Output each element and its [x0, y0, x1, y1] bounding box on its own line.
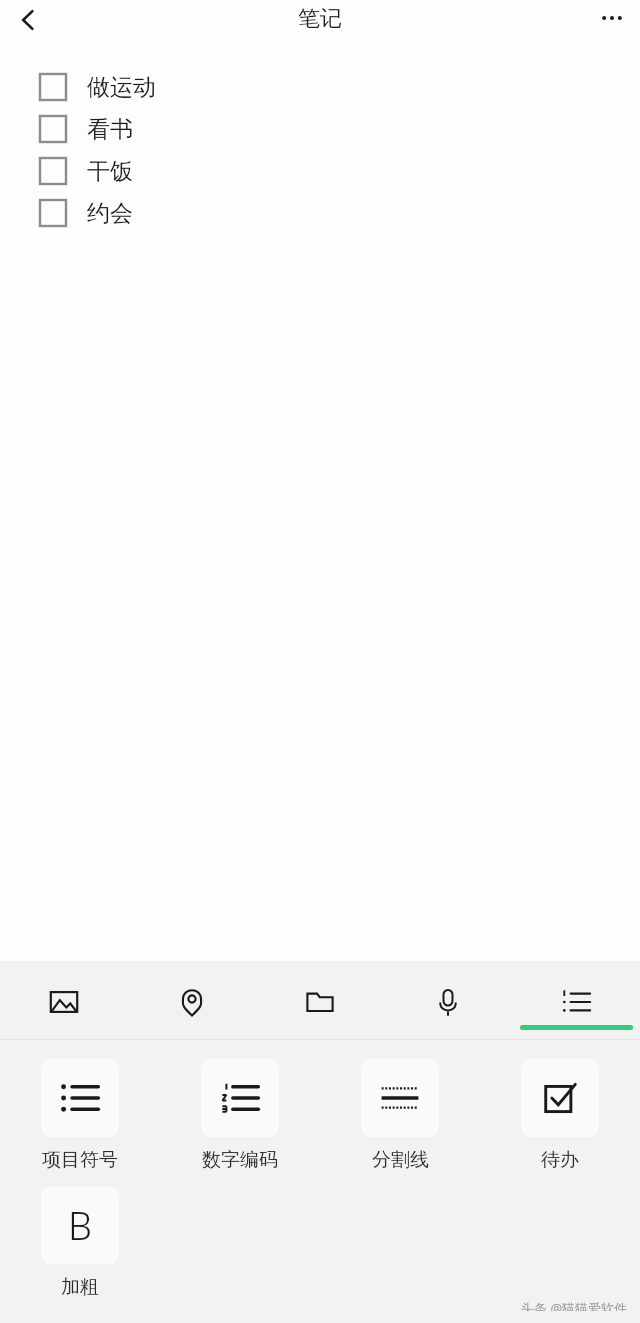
button[interactable]: List formatting	[512, 979, 640, 1025]
button[interactable]: Insert image	[0, 979, 128, 1025]
staticText: 干饭	[87, 157, 133, 186]
button[interactable]: Insert file	[256, 979, 384, 1025]
staticText: 看书	[87, 115, 133, 144]
staticText: 头条 @猫猫爱软件	[521, 1299, 628, 1311]
staticText: 做运动	[87, 73, 156, 102]
staticText: 加粗	[61, 1275, 99, 1299]
button[interactable]: Back	[4, 0, 52, 44]
staticText: 项目符号	[42, 1148, 118, 1172]
button[interactable]: 干饭	[0, 150, 640, 192]
button[interactable]: 项目符号	[0, 1059, 160, 1172]
staticText: 待办	[541, 1148, 579, 1172]
button[interactable]: 分割线	[320, 1059, 480, 1172]
staticText: B	[68, 1199, 92, 1251]
button[interactable]: B	[0, 1186, 160, 1299]
button[interactable]: More options	[588, 0, 636, 42]
button[interactable]: 约会	[0, 192, 640, 234]
staticText: 数字编码	[202, 1148, 278, 1172]
button[interactable]: Voice input	[384, 979, 512, 1025]
button[interactable]: 看书	[0, 108, 640, 150]
button[interactable]: 做运动	[0, 66, 640, 108]
button[interactable]: Insert location	[128, 979, 256, 1025]
button[interactable]: 数字编码	[160, 1059, 320, 1172]
staticText: 分割线	[372, 1148, 429, 1172]
staticText: 约会	[87, 199, 133, 228]
button[interactable]: 待办	[480, 1059, 640, 1172]
staticText: 笔记	[298, 5, 342, 33]
